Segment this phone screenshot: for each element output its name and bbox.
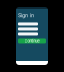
staticText: Continue <box>24 38 39 43</box>
button[interactable]: Continue <box>18 38 46 43</box>
staticText: Sign in <box>18 12 34 18</box>
